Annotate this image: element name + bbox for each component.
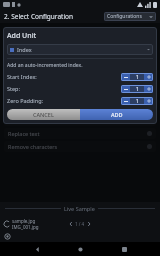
button[interactable]: Remove characters [4, 141, 156, 152]
button[interactable]: Decrease Zero Padding: [121, 97, 130, 105]
staticText: 2. Select Configuration [4, 12, 74, 21]
staticText: Live Sample [64, 205, 95, 212]
button[interactable]: Add character at position [4, 115, 156, 126]
staticText: IMG_001.jpg [12, 224, 39, 230]
staticText: CANCEL [33, 111, 54, 118]
button[interactable]: Decrease Start Index: [121, 73, 130, 81]
staticText: Add character at position [8, 117, 147, 124]
button[interactable]: Back [30, 242, 44, 256]
staticText: 1 [136, 74, 139, 81]
staticText: Change extension [8, 104, 147, 111]
staticText: seq [15, 62, 23, 68]
staticText: Step: [7, 85, 121, 92]
staticText: Zero Padding: [7, 97, 121, 104]
staticText: Remove characters [8, 143, 147, 150]
staticText: 1 [136, 98, 139, 105]
staticText: Configurations [107, 13, 149, 20]
staticText: Add Unit [7, 31, 37, 41]
button[interactable]: Change extension [4, 102, 156, 113]
button[interactable]: TEXT [4, 38, 34, 70]
staticText: 1 [136, 86, 139, 93]
button[interactable]: 1 / 4 [67, 219, 93, 229]
button[interactable]: Replace text [4, 128, 156, 139]
button[interactable]: Index [7, 44, 153, 55]
staticText: INDEX [46, 40, 60, 46]
button[interactable]: Decrease Step: [121, 85, 130, 93]
button[interactable]: INDEX [38, 38, 68, 70]
button[interactable]: Increase Zero Padding: [144, 97, 153, 105]
button[interactable]: Configurations [104, 12, 156, 21]
staticText: 1,2,3 [48, 62, 59, 68]
staticText: 1 / 4 [75, 221, 85, 227]
staticText: Select name format [54, 26, 105, 33]
button[interactable]: Change case [4, 89, 156, 100]
staticText: Change case [8, 91, 147, 98]
button[interactable]: Home [73, 242, 87, 256]
staticText: Replace text [8, 130, 147, 137]
button[interactable]: CANCEL [7, 109, 80, 120]
button[interactable]: Recents [117, 242, 131, 256]
button[interactable]: Increase Start Index: [144, 73, 153, 81]
staticText: Add [83, 40, 92, 46]
staticText: Add an auto-incremented index. [7, 62, 83, 69]
staticText: TEXT [14, 40, 25, 46]
button[interactable]: Settings [4, 233, 11, 240]
staticText: Index [17, 46, 147, 53]
staticText: sample.jpg [12, 218, 36, 224]
staticText: Start Index: [7, 73, 121, 80]
button[interactable]: ADD [80, 109, 153, 120]
staticText: ADD [111, 111, 123, 118]
button[interactable]: Increase Step: [144, 85, 153, 93]
button[interactable]: Add [72, 38, 102, 70]
